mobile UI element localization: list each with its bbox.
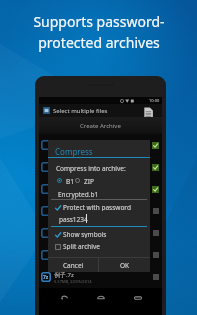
- staticText: 例子.7z: [54, 271, 74, 279]
- staticText: 5.37MB, 22/05/2014: [54, 279, 92, 284]
- button[interactable]: Cancel: [48, 258, 98, 272]
- staticText: 10:00: [149, 98, 160, 103]
- button[interactable]: Show symbols: [54, 230, 107, 238]
- staticText: Select multiple files: [53, 107, 108, 115]
- staticText: OK: [120, 261, 130, 270]
- staticText: Split archive: [63, 242, 100, 250]
- staticText: Compress: [55, 146, 93, 157]
- button[interactable]: Protect with password: [54, 203, 131, 211]
- staticText: ZIP: [84, 177, 94, 186]
- staticText: Encrypted.b1: [58, 190, 99, 199]
- button[interactable]: Home: [94, 291, 107, 304]
- staticText: Protect with password: [63, 203, 131, 211]
- button[interactable]: [39, 244, 162, 266]
- button[interactable]: [39, 178, 162, 200]
- button[interactable]: [39, 156, 162, 178]
- staticText: Compress into archive:: [56, 164, 126, 173]
- staticText: protected archives: [38, 33, 160, 52]
- button[interactable]: [55, 176, 64, 185]
- staticText: Show symbols: [63, 230, 107, 238]
- button[interactable]: Create Archive: [39, 117, 162, 134]
- button[interactable]: Split archive: [54, 242, 100, 250]
- button[interactable]: [39, 134, 162, 156]
- staticText: 7z: [43, 274, 49, 281]
- button[interactable]: [39, 200, 162, 222]
- staticText: Supports password-: [33, 12, 165, 31]
- button[interactable]: [73, 176, 82, 185]
- button[interactable]: New file: [143, 107, 154, 118]
- button[interactable]: Recents: [131, 291, 144, 304]
- staticText: B1: [66, 177, 74, 186]
- staticText: Create Archive: [80, 122, 121, 130]
- staticText: pass1234: [59, 215, 88, 224]
- button[interactable]: Back: [57, 291, 70, 304]
- staticText: Cancel: [63, 261, 84, 270]
- button[interactable]: Select multiple files: [39, 104, 162, 117]
- button[interactable]: [39, 222, 162, 244]
- button[interactable]: OK: [99, 258, 150, 272]
- button[interactable]: 7z: [39, 266, 162, 288]
